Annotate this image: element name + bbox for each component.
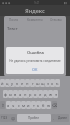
staticText: ● ● ● [2, 1, 11, 5]
staticText: х [51, 81, 54, 86]
button[interactable]: ц [5, 79, 10, 87]
staticText: ц [6, 81, 9, 86]
staticText: г [32, 81, 34, 86]
staticText: Комменты [27, 18, 43, 22]
staticText: й [1, 81, 4, 86]
staticText: ю [47, 103, 51, 108]
button[interactable]: д [43, 90, 48, 98]
button[interactable]: Почта [4, 16, 24, 24]
staticText: Пробел [28, 116, 40, 120]
button[interactable]: э [53, 90, 58, 98]
staticText: ⌫ [52, 103, 57, 108]
staticText: Текст [7, 26, 18, 32]
staticText: ш [36, 81, 40, 86]
button[interactable]: ?123 [0, 114, 9, 122]
staticText: я [7, 103, 10, 108]
button[interactable]: Отзывы [45, 16, 66, 24]
staticText: д [44, 92, 47, 97]
button[interactable]: ф [3, 90, 8, 98]
button[interactable]: Shift [0, 101, 5, 109]
staticText: о [34, 92, 37, 97]
button[interactable]: ш [35, 79, 40, 87]
button[interactable]: й [0, 79, 5, 87]
button[interactable]: г [30, 79, 35, 87]
button[interactable]: р [28, 90, 33, 98]
button[interactable]: а [18, 90, 23, 98]
staticText: ф [4, 92, 7, 97]
staticText: т [33, 103, 35, 108]
button[interactable]: п [23, 90, 28, 98]
staticText: OK [32, 67, 38, 72]
staticText: а [19, 92, 22, 97]
button[interactable]: OK [9, 65, 61, 74]
button[interactable]: ю [46, 101, 51, 109]
staticText: п [24, 92, 27, 97]
button[interactable]: и [26, 101, 31, 109]
staticText: е [21, 81, 24, 86]
button[interactable]: ъ [55, 79, 60, 87]
staticText: щ [41, 81, 45, 86]
staticText: Яндекс [25, 7, 45, 14]
button[interactable]: м [21, 101, 26, 109]
staticText: . [53, 116, 55, 121]
staticText: Далее [58, 116, 67, 120]
button[interactable]: о [33, 90, 38, 98]
staticText: ☺ [11, 116, 16, 121]
button[interactable]: к [15, 79, 20, 87]
button[interactable]: в [13, 90, 18, 98]
staticText: ч [12, 103, 15, 108]
button[interactable]: н [25, 79, 30, 87]
button[interactable]: у [10, 79, 15, 87]
staticText: Почта [9, 18, 19, 22]
button[interactable]: т [31, 101, 36, 109]
staticText: с [18, 103, 20, 108]
staticText: ъ [56, 81, 59, 86]
button[interactable]: Пробел [17, 114, 51, 122]
staticText: Не удалось установить соединение [9, 59, 61, 63]
staticText: м [22, 103, 26, 108]
staticText: 9:41 [34, 1, 40, 5]
staticText: ⇧ [1, 103, 5, 108]
staticText: н [26, 81, 29, 86]
button[interactable]: я [6, 101, 11, 109]
staticText: Ошибка [27, 50, 44, 56]
staticText: ?123 [1, 116, 8, 120]
button[interactable]: Комменты [24, 16, 45, 24]
staticText: и [27, 103, 30, 108]
staticText: в [14, 92, 17, 97]
staticText: л [39, 92, 42, 97]
staticText: к [16, 81, 19, 86]
staticText: б [42, 103, 45, 108]
button[interactable]: л [38, 90, 43, 98]
button[interactable]: с [16, 101, 21, 109]
button[interactable]: ж [48, 90, 53, 98]
button[interactable]: щ [40, 79, 45, 87]
button[interactable]: б [41, 101, 46, 109]
staticText: ы [9, 92, 13, 97]
staticText: Отзывы [50, 18, 62, 22]
staticText: ь [37, 103, 40, 108]
staticText: ж [49, 92, 53, 97]
button[interactable]: е [20, 79, 25, 87]
staticText: ▮▮ [64, 1, 68, 4]
staticText: у [11, 81, 14, 86]
button[interactable]: ь [36, 101, 41, 109]
button[interactable]: Emoji [9, 114, 17, 122]
button[interactable]: з [45, 79, 50, 87]
button[interactable]: Далее [56, 114, 69, 122]
button[interactable]: ч [11, 101, 16, 109]
button[interactable]: х [50, 79, 55, 87]
staticText: р [29, 92, 32, 97]
staticText: э [55, 92, 57, 97]
button[interactable]: Backspace [52, 101, 57, 109]
button[interactable]: ы [8, 90, 13, 98]
staticText: з [47, 81, 49, 86]
